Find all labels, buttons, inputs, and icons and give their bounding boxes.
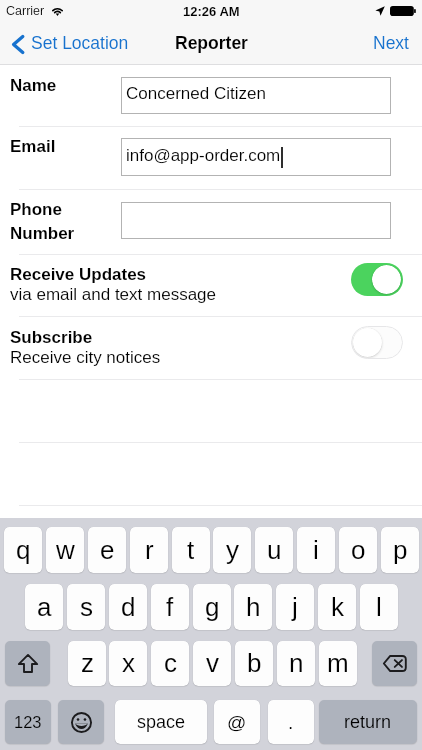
staticText: Concerned Citizen bbox=[126, 84, 266, 103]
staticText: l bbox=[376, 592, 382, 621]
button[interactable]: 123 bbox=[5, 700, 51, 744]
staticText: k bbox=[331, 592, 344, 621]
staticText: h bbox=[246, 592, 261, 621]
staticText: Phone bbox=[10, 200, 62, 219]
button[interactable]: h bbox=[234, 584, 272, 630]
staticText: v bbox=[206, 648, 219, 677]
button[interactable]: y bbox=[213, 527, 251, 573]
button[interactable]: c bbox=[151, 641, 189, 686]
staticText: c bbox=[164, 648, 177, 677]
staticText: g bbox=[205, 592, 220, 621]
staticText: Reporter bbox=[175, 33, 248, 53]
button[interactable] bbox=[0, 254, 422, 317]
staticText: e bbox=[100, 535, 115, 564]
staticText: space bbox=[137, 712, 186, 732]
staticText: Next bbox=[373, 33, 409, 53]
staticText: x bbox=[122, 648, 135, 677]
button[interactable]: b bbox=[235, 641, 273, 686]
staticText: y bbox=[226, 535, 239, 564]
button[interactable]: e bbox=[88, 527, 126, 573]
button[interactable]: l bbox=[360, 584, 398, 630]
staticText: 123 bbox=[14, 713, 42, 731]
button[interactable]: o bbox=[339, 527, 377, 573]
button[interactable]: x bbox=[109, 641, 147, 686]
button[interactable]: space bbox=[115, 700, 207, 744]
button[interactable]: Emoji bbox=[58, 700, 104, 744]
button[interactable]: q bbox=[4, 527, 42, 573]
button[interactable]: i bbox=[297, 527, 335, 573]
staticText: Email bbox=[10, 137, 56, 156]
button[interactable]: a bbox=[25, 584, 63, 630]
staticText: z bbox=[81, 648, 94, 677]
staticText: n bbox=[289, 648, 304, 677]
staticText: i bbox=[313, 535, 319, 564]
button[interactable]: z bbox=[68, 641, 106, 686]
button[interactable]: p bbox=[381, 527, 419, 573]
button[interactable]: @ bbox=[214, 700, 260, 744]
staticText: t bbox=[187, 535, 195, 564]
staticText: r bbox=[145, 535, 154, 564]
button[interactable]: n bbox=[277, 641, 315, 686]
button[interactable]: . bbox=[268, 700, 314, 744]
button[interactable]: f bbox=[151, 584, 189, 630]
staticText: s bbox=[80, 592, 93, 621]
button[interactable] bbox=[0, 189, 422, 254]
button[interactable] bbox=[0, 126, 422, 189]
staticText: d bbox=[121, 592, 136, 621]
button[interactable] bbox=[0, 65, 422, 127]
button[interactable]: Backspace bbox=[372, 641, 417, 686]
staticText: return bbox=[344, 712, 392, 732]
button[interactable]: Next bbox=[362, 26, 422, 64]
button[interactable]: s bbox=[67, 584, 105, 630]
staticText: q bbox=[16, 535, 31, 564]
button[interactable]: r bbox=[130, 527, 168, 573]
button[interactable]: Text field bbox=[121, 77, 391, 114]
button[interactable]: Text field bbox=[121, 138, 391, 176]
button[interactable]: Shift bbox=[5, 641, 50, 686]
staticText: u bbox=[267, 535, 282, 564]
staticText: f bbox=[166, 592, 174, 621]
staticText: p bbox=[393, 535, 408, 564]
button[interactable]: u bbox=[255, 527, 293, 573]
button[interactable]: v bbox=[193, 641, 231, 686]
staticText: @ bbox=[227, 712, 247, 733]
button[interactable]: Set Location bbox=[6, 26, 138, 64]
button[interactable]: t bbox=[172, 527, 210, 573]
button[interactable]: j bbox=[276, 584, 314, 630]
staticText: b bbox=[247, 648, 262, 677]
staticText: Number bbox=[10, 224, 75, 243]
staticText: . bbox=[288, 712, 294, 733]
staticText: Set Location bbox=[31, 33, 129, 53]
button[interactable]: Switch on bbox=[351, 263, 403, 296]
button[interactable]: Switch off bbox=[351, 326, 403, 359]
button[interactable] bbox=[0, 316, 422, 379]
staticText: m bbox=[327, 648, 349, 677]
staticText: 12:26 AM bbox=[183, 4, 240, 19]
staticText: Carrier bbox=[6, 4, 45, 18]
staticText: Receive city notices bbox=[10, 348, 161, 367]
staticText: Receive Updates bbox=[10, 265, 147, 284]
staticText: o bbox=[351, 535, 366, 564]
button[interactable]: w bbox=[46, 527, 84, 573]
button[interactable]: k bbox=[318, 584, 356, 630]
staticText: j bbox=[292, 592, 298, 621]
staticText: info@app-order.com bbox=[126, 146, 281, 165]
staticText: Subscribe bbox=[10, 328, 93, 347]
staticText: a bbox=[37, 592, 52, 621]
staticText: Name bbox=[10, 76, 57, 95]
button[interactable]: d bbox=[109, 584, 147, 630]
staticText: w bbox=[56, 535, 75, 564]
button[interactable]: g bbox=[193, 584, 231, 630]
button[interactable]: m bbox=[319, 641, 357, 686]
button[interactable]: return bbox=[319, 700, 417, 744]
button[interactable]: Text field bbox=[121, 202, 391, 239]
staticText: via email and text message bbox=[10, 285, 216, 304]
